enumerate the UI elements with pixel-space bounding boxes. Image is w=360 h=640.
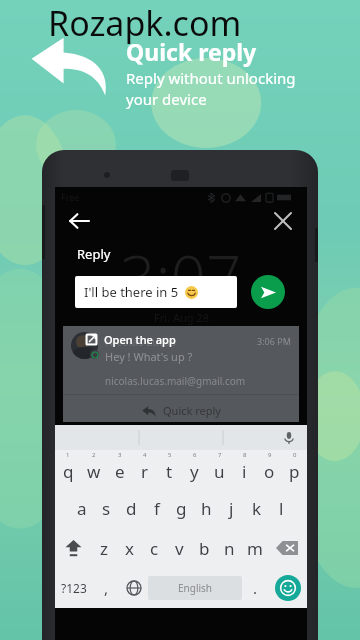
staticText: 7 xyxy=(218,451,222,459)
staticText: h xyxy=(201,497,212,520)
staticText: e xyxy=(115,460,125,483)
button[interactable]: d xyxy=(119,489,144,528)
staticText: y xyxy=(190,460,199,483)
button[interactable]: English xyxy=(148,576,242,600)
staticText: 3:07 xyxy=(120,235,242,319)
button[interactable]: . xyxy=(242,568,268,608)
button[interactable]: c xyxy=(142,528,167,568)
staticText: t xyxy=(166,460,173,483)
other: Reply xyxy=(30,34,110,96)
button[interactable]: s xyxy=(94,489,119,528)
button[interactable]: 2 xyxy=(81,450,107,489)
button[interactable]: Send xyxy=(251,275,285,309)
staticText: 6 xyxy=(193,451,197,459)
button[interactable]: 1 xyxy=(55,450,81,489)
staticText: Hey ! What's up ? xyxy=(105,349,193,364)
button[interactable]: , xyxy=(93,568,119,608)
staticText: , xyxy=(104,578,109,598)
staticText: I'll be there in 5 xyxy=(84,283,179,301)
button[interactable]: m xyxy=(242,528,267,568)
staticText: r xyxy=(141,460,149,483)
button[interactable]: 7 xyxy=(207,450,232,489)
staticText: x xyxy=(125,537,134,560)
staticText: nicolas.lucas.mail@gmail.com xyxy=(105,374,246,388)
button[interactable]: h xyxy=(194,489,219,528)
button[interactable]: Shift xyxy=(55,528,91,568)
staticText: z xyxy=(100,537,108,560)
staticText: Reply xyxy=(77,245,111,263)
staticText: v xyxy=(175,537,184,560)
staticText: a xyxy=(77,497,87,520)
staticText: k xyxy=(252,497,262,520)
staticText: 9 xyxy=(268,451,272,459)
button[interactable]: I'll be there in 5 xyxy=(75,276,237,308)
button[interactable]: k xyxy=(244,489,269,528)
staticText: 3:06 PM xyxy=(257,335,291,347)
staticText: l xyxy=(279,497,284,520)
staticText: Open the app xyxy=(104,332,176,347)
button[interactable]: Change language xyxy=(119,568,148,608)
button[interactable]: Emoji xyxy=(268,568,307,608)
staticText: Quick reply xyxy=(126,36,257,67)
staticText: n xyxy=(224,537,235,560)
button[interactable]: z xyxy=(91,528,117,568)
staticText: q xyxy=(63,460,74,483)
button[interactable]: a xyxy=(69,489,94,528)
staticText: j xyxy=(229,497,234,520)
staticText: u xyxy=(214,460,225,483)
staticText: g xyxy=(176,497,187,520)
staticText: ?123 xyxy=(61,580,87,596)
staticText: Quick reply xyxy=(163,403,221,418)
button[interactable]: 3 xyxy=(107,450,132,489)
staticText: b xyxy=(199,537,210,560)
button[interactable]: v xyxy=(167,528,192,568)
staticText: Rozapk.com xyxy=(48,0,242,46)
staticText: . xyxy=(253,578,258,598)
staticText: Reply without unlocking your device xyxy=(126,68,296,110)
staticText: o xyxy=(264,460,275,483)
button[interactable]: x xyxy=(117,528,142,568)
staticText: 1 xyxy=(66,451,70,459)
staticText: c xyxy=(150,537,159,560)
staticText: 8 xyxy=(243,451,247,459)
button[interactable]: Back xyxy=(61,203,97,239)
button[interactable]: Quick reply xyxy=(142,403,221,418)
button[interactable]: j xyxy=(219,489,244,528)
staticText: 4 xyxy=(143,451,147,459)
staticText: m xyxy=(247,537,263,560)
staticText: f xyxy=(154,497,160,520)
button[interactable]: n xyxy=(217,528,242,568)
button[interactable]: 4 xyxy=(132,450,157,489)
button[interactable]: ?123 xyxy=(55,568,93,608)
button[interactable]: l xyxy=(269,489,294,528)
staticText: 3 xyxy=(118,451,122,459)
button[interactable]: 5 xyxy=(157,450,182,489)
button[interactable]: 9 xyxy=(257,450,282,489)
button[interactable]: Voice input xyxy=(280,429,298,447)
staticText: Fri, Aug 28 xyxy=(154,310,209,325)
staticText: p xyxy=(289,460,300,483)
staticText: s xyxy=(102,497,111,520)
staticText: 5 xyxy=(168,451,172,459)
button[interactable]: f xyxy=(144,489,169,528)
button[interactable]: Delete xyxy=(267,528,307,568)
staticText: Free xyxy=(61,191,80,203)
staticText: 0 xyxy=(293,451,297,459)
staticText: i xyxy=(242,460,247,483)
button[interactable]: Open the app xyxy=(85,332,176,347)
button[interactable]: 6 xyxy=(182,450,207,489)
button[interactable]: Nicolas Lucas xyxy=(63,326,299,422)
staticText: d xyxy=(126,497,137,520)
staticText: 2 xyxy=(92,451,96,459)
button[interactable]: 8 xyxy=(232,450,257,489)
staticText: English xyxy=(178,581,213,595)
button[interactable]: 0 xyxy=(282,450,307,489)
staticText: w xyxy=(87,460,101,483)
staticText: Nicolas Lucas xyxy=(105,334,176,349)
button[interactable]: g xyxy=(169,489,194,528)
button[interactable]: Close xyxy=(265,203,301,239)
button[interactable]: b xyxy=(192,528,217,568)
